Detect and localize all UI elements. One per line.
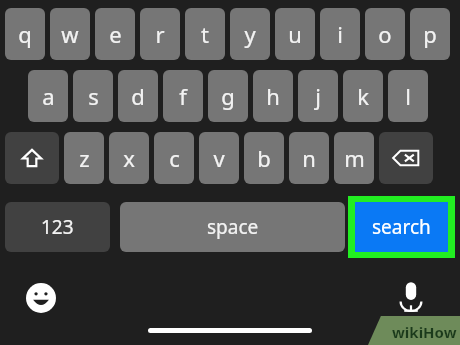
button[interactable]: space: [120, 202, 345, 252]
staticText: n: [302, 143, 316, 173]
staticText: g: [221, 81, 235, 111]
staticText: b: [257, 143, 271, 173]
staticText: l: [405, 81, 411, 111]
button[interactable]: c: [154, 132, 194, 184]
button[interactable]: 123: [5, 202, 110, 252]
button[interactable]: Voice input: [392, 278, 430, 316]
staticText: u: [288, 19, 302, 49]
button[interactable]: Shift: [5, 132, 59, 184]
staticText: space: [207, 214, 259, 240]
button[interactable]: n: [289, 132, 329, 184]
button[interactable]: g: [208, 70, 248, 122]
button[interactable]: Emoji: [24, 281, 58, 315]
button[interactable]: d: [118, 70, 158, 122]
button[interactable]: Backspace: [379, 132, 433, 184]
staticText: f: [179, 81, 187, 111]
staticText: m: [344, 143, 365, 173]
staticText: k: [357, 81, 369, 111]
button[interactable]: y: [230, 8, 270, 60]
staticText: search: [372, 214, 431, 240]
button[interactable]: l: [388, 70, 428, 122]
staticText: h: [266, 81, 280, 111]
button[interactable]: j: [298, 70, 338, 122]
staticText: p: [423, 19, 437, 49]
staticText: wikiHow: [392, 322, 457, 342]
button[interactable]: r: [140, 8, 180, 60]
staticText: c: [169, 143, 180, 173]
staticText: v: [213, 143, 225, 173]
button[interactable]: u: [275, 8, 315, 60]
staticText: y: [244, 19, 256, 49]
button[interactable]: t: [185, 8, 225, 60]
button[interactable]: s: [73, 70, 113, 122]
button[interactable]: f: [163, 70, 203, 122]
staticText: t: [201, 19, 209, 49]
staticText: i: [337, 19, 343, 49]
staticText: q: [18, 19, 32, 49]
button[interactable]: search: [355, 202, 448, 252]
button[interactable]: p: [410, 8, 450, 60]
button[interactable]: m: [334, 132, 374, 184]
staticText: e: [109, 19, 122, 49]
staticText: s: [88, 81, 99, 111]
staticText: x: [123, 143, 135, 173]
staticText: r: [155, 19, 165, 49]
staticText: w: [61, 19, 79, 49]
button[interactable]: k: [343, 70, 383, 122]
button[interactable]: w: [50, 8, 90, 60]
staticText: j: [315, 81, 321, 111]
button[interactable]: a: [28, 70, 68, 122]
button[interactable]: v: [199, 132, 239, 184]
button[interactable]: q: [5, 8, 45, 60]
button[interactable]: z: [64, 132, 104, 184]
button[interactable]: i: [320, 8, 360, 60]
button[interactable]: e: [95, 8, 135, 60]
button[interactable]: b: [244, 132, 284, 184]
staticText: a: [42, 81, 55, 111]
staticText: d: [131, 81, 145, 111]
button[interactable]: x: [109, 132, 149, 184]
button[interactable]: o: [365, 8, 405, 60]
staticText: 123: [41, 214, 74, 240]
staticText: o: [378, 19, 392, 49]
button[interactable]: h: [253, 70, 293, 122]
staticText: z: [79, 143, 90, 173]
